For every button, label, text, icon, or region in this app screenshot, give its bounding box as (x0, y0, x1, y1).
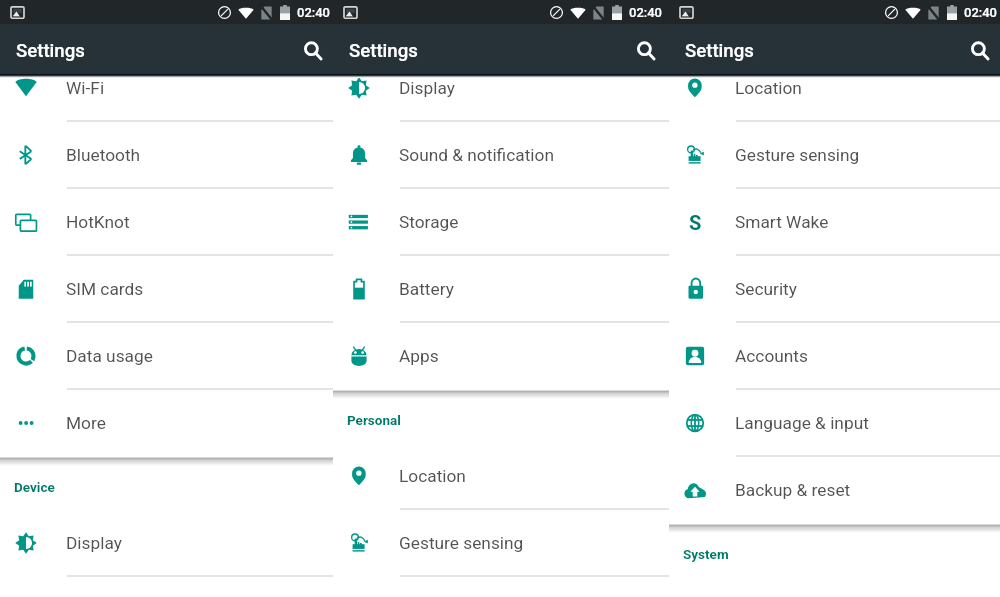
button[interactable]: Security (669, 255, 1000, 322)
button[interactable]: Wi-Fi (0, 54, 333, 121)
button[interactable]: Display (0, 509, 333, 576)
staticText: Gesture sensing (735, 145, 860, 165)
button[interactable]: Gesture sensing (333, 509, 669, 576)
staticText: Device (14, 479, 55, 495)
staticText: Gesture sensing (399, 533, 524, 553)
button[interactable]: Gesture sensing (669, 121, 1000, 188)
staticText: Backup & reset (735, 480, 851, 500)
staticText: Location (735, 78, 802, 98)
staticText: Storage (399, 212, 459, 232)
button[interactable]: Bluetooth (0, 121, 333, 188)
button[interactable]: Display (333, 54, 669, 121)
staticText: Settings (685, 40, 754, 62)
staticText: More (66, 413, 106, 433)
button[interactable]: Sound & notification (333, 121, 669, 188)
button[interactable]: Backup & reset (669, 456, 1000, 523)
button[interactable]: Accounts (669, 322, 1000, 389)
button[interactable]: Location (333, 442, 669, 509)
staticText: Language & input (735, 413, 869, 433)
button[interactable]: HotKnot (0, 188, 333, 255)
staticText: Wi-Fi (66, 78, 105, 98)
staticText: 02:40 (297, 5, 330, 20)
button[interactable]: Search (961, 25, 999, 73)
staticText: Settings (349, 40, 418, 62)
button[interactable]: Location (669, 54, 1000, 121)
staticText: Apps (399, 346, 439, 366)
staticText: Bluetooth (66, 145, 141, 165)
staticText: Security (735, 279, 797, 299)
button[interactable]: S (669, 188, 1000, 255)
staticText: Settings (16, 40, 85, 62)
staticText: Location (399, 466, 466, 486)
staticText: System (683, 546, 729, 562)
staticText: Accounts (735, 346, 808, 366)
button[interactable]: Language & input (669, 389, 1000, 456)
button[interactable]: Data usage (0, 322, 333, 389)
staticText: Battery (399, 279, 454, 299)
staticText: 02:40 (964, 5, 997, 20)
staticText: Display (66, 533, 122, 553)
staticText: 02:40 (629, 5, 662, 20)
button[interactable]: Search (627, 25, 665, 73)
staticText: Sound & notification (399, 145, 554, 165)
staticText: Smart Wake (735, 212, 829, 232)
staticText: Data usage (66, 346, 153, 366)
button[interactable]: Storage (333, 188, 669, 255)
staticText: SIM cards (66, 279, 144, 299)
button[interactable]: Search (294, 25, 332, 73)
button[interactable]: Apps (333, 322, 669, 389)
staticText: S (689, 211, 702, 233)
staticText: Display (399, 78, 455, 98)
button[interactable]: Battery (333, 255, 669, 322)
staticText: Personal (347, 412, 401, 428)
button[interactable]: More (0, 389, 333, 456)
button[interactable]: SIM cards (0, 255, 333, 322)
staticText: HotKnot (66, 212, 130, 232)
